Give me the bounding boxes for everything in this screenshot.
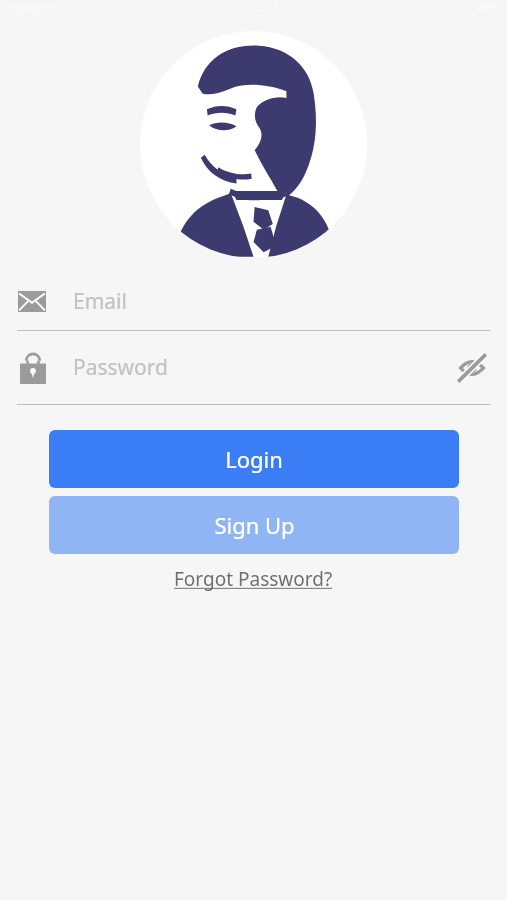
button[interactable]: Forgot Password? — [168, 563, 339, 595]
staticText: Login — [225, 444, 283, 474]
staticText: Sign Up — [214, 510, 295, 540]
button[interactable]: Sign Up — [49, 496, 459, 554]
staticText: Email — [73, 287, 127, 316]
button[interactable]: Show password — [455, 351, 489, 385]
staticText: Password — [73, 353, 168, 382]
staticText: Forgot Password? — [174, 566, 333, 592]
button[interactable]: Login — [49, 430, 459, 488]
button[interactable]: Email — [0, 272, 507, 330]
button[interactable]: Password — [0, 331, 507, 404]
